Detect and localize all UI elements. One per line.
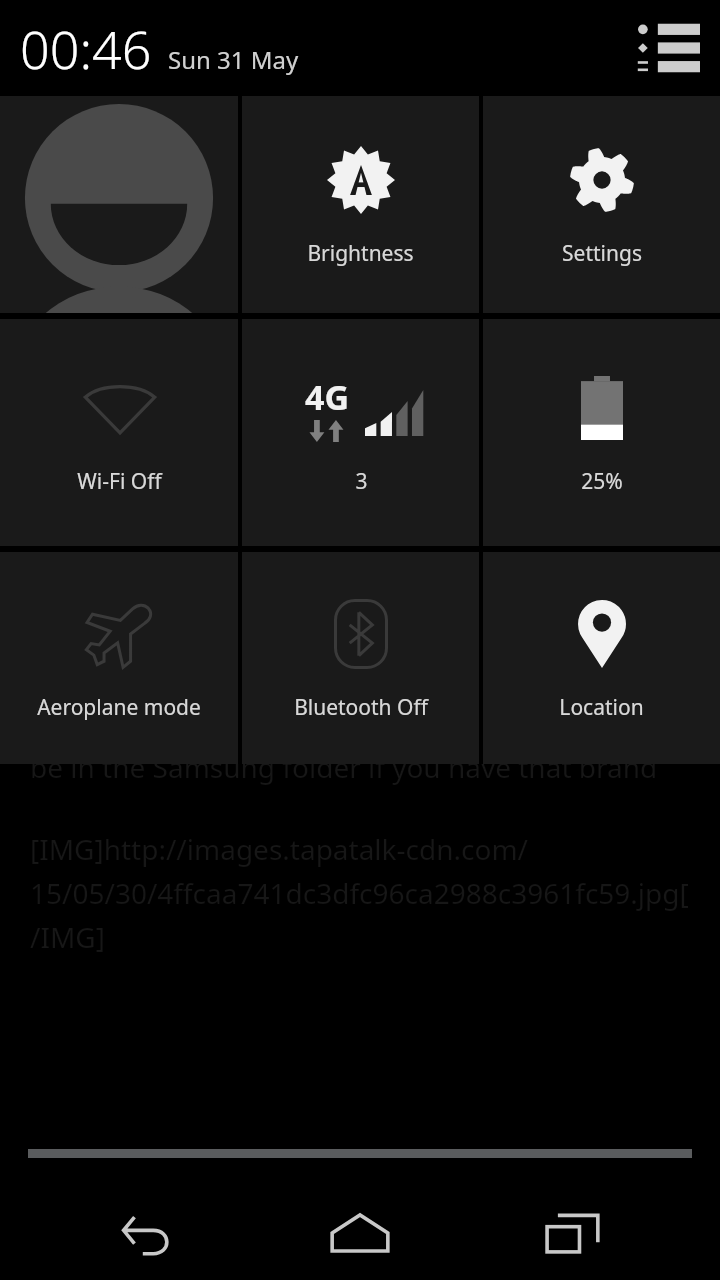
staticText: Settings: [562, 239, 642, 268]
button[interactable]: Settings: [483, 96, 720, 313]
staticText: 00:46: [20, 13, 152, 84]
button[interactable]: 25%: [483, 319, 720, 546]
button[interactable]: Bluetooth Off: [242, 552, 479, 764]
staticText: 3: [355, 467, 368, 496]
staticText: be in the Samsung folder if you have tha…: [30, 748, 658, 786]
staticText: Wi-Fi Off: [77, 467, 162, 496]
button[interactable]: Aeroplane mode: [0, 552, 238, 764]
button[interactable]: 4G: [242, 319, 479, 546]
staticText: Sun 31 May: [168, 43, 299, 76]
button[interactable]: Brightness: [242, 96, 479, 313]
button[interactable]: Location: [483, 552, 720, 764]
button[interactable]: Home: [295, 1186, 425, 1280]
staticText: 25%: [581, 467, 623, 496]
staticText: [IMG]http://images.tapatalk-cdn.com/15/0…: [30, 830, 690, 956]
staticText: Brightness: [307, 239, 414, 268]
staticText: 4G: [305, 374, 350, 420]
button[interactable]: User profile: [0, 96, 238, 313]
staticText: Bluetooth Off: [294, 693, 428, 722]
button[interactable]: Wi-Fi Off: [0, 319, 238, 546]
button[interactable]: Back: [83, 1186, 213, 1280]
button[interactable]: Recent apps: [508, 1186, 638, 1280]
button[interactable]: Notifications: [632, 20, 700, 76]
staticText: Aeroplane mode: [37, 693, 201, 722]
staticText: Location: [559, 693, 644, 722]
